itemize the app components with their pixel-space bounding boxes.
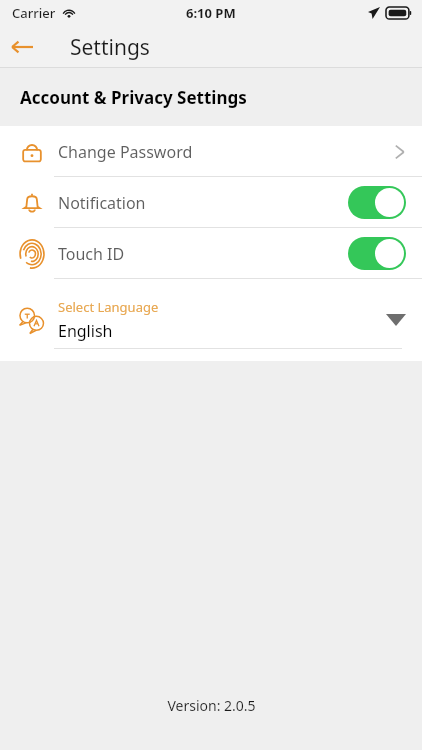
staticText: English — [58, 320, 113, 342]
staticText: Change Password — [58, 141, 394, 163]
staticText: Notification — [58, 192, 348, 214]
button[interactable]: Touch ID — [0, 228, 422, 279]
button[interactable]: Select Language — [0, 279, 422, 361]
staticText: Version: 2.0.5 — [167, 696, 256, 715]
button[interactable]: Notification — [0, 177, 422, 228]
button[interactable]: Toggle — [348, 186, 406, 219]
button[interactable]: Toggle — [348, 237, 406, 270]
staticText: Settings — [70, 33, 150, 62]
button[interactable]: Back — [0, 26, 44, 68]
staticText: Account & Privacy Settings — [20, 86, 247, 109]
staticText: Touch ID — [58, 243, 348, 265]
staticText: 6:10 PM — [186, 4, 236, 22]
staticText: Select Language — [58, 298, 159, 316]
staticText: Carrier — [12, 4, 56, 22]
button[interactable]: Change Password — [0, 126, 422, 177]
